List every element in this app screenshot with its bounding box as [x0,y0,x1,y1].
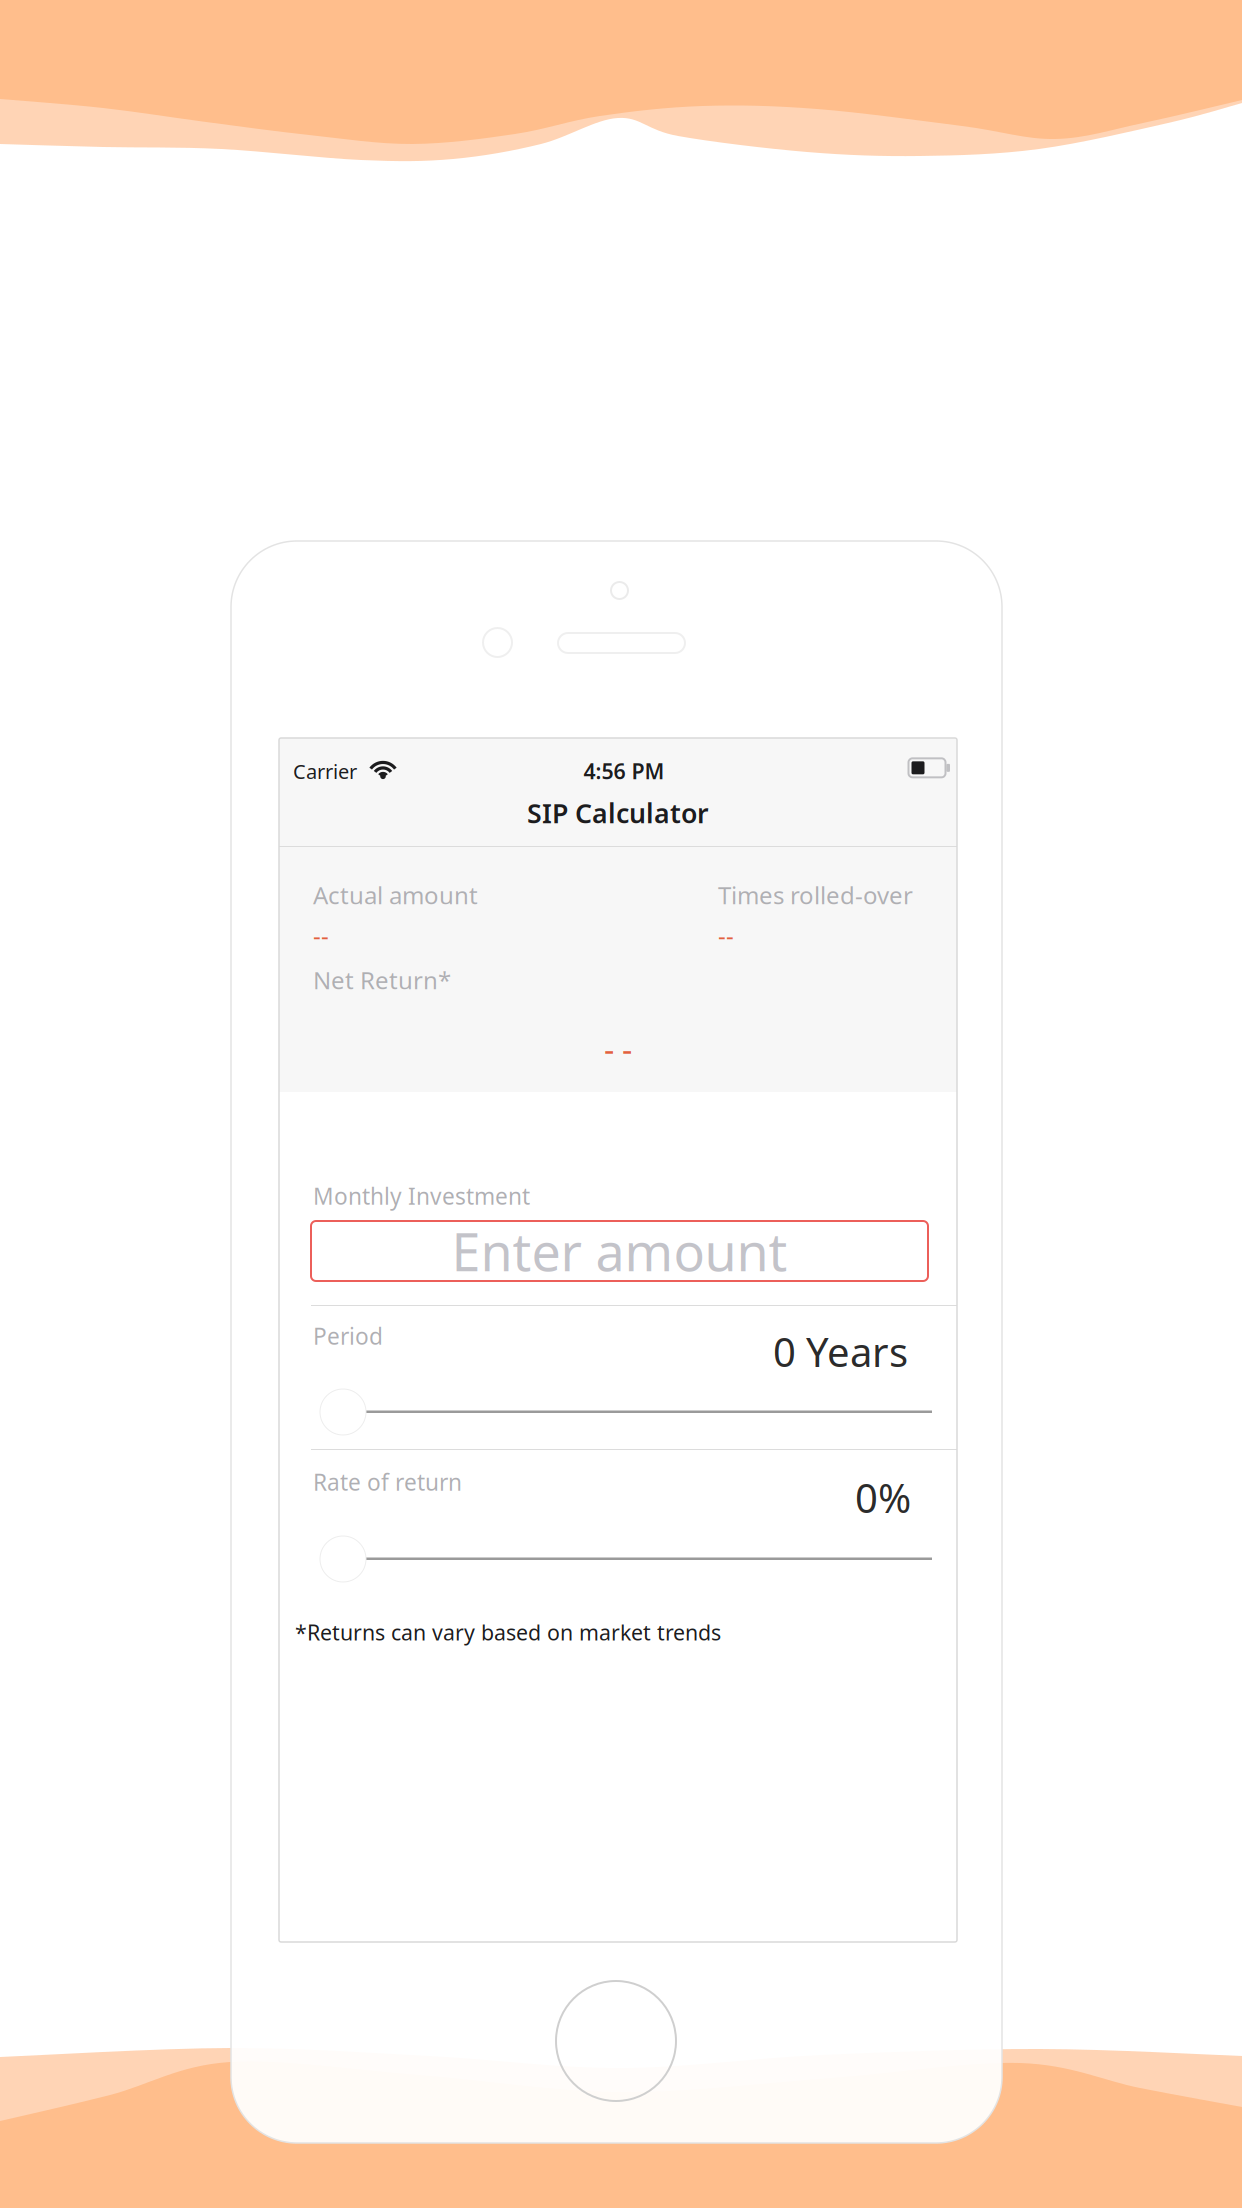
staticText: Monthly Investment [313,1181,530,1211]
staticText: Times rolled-over [718,879,913,911]
staticText: SIP Calculator [527,795,709,831]
staticText: Actual amount [313,879,478,911]
staticText: -- [313,919,329,951]
staticText: Enter amount [451,1216,787,1286]
staticText: -- [718,919,734,951]
staticText: Net Return* [313,964,451,996]
staticText: - - [604,1028,632,1070]
staticText: 0 Years [773,1325,908,1378]
staticText: 0% [855,1471,911,1524]
staticText: 4:56 PM [583,757,664,785]
staticText: Rate of return [313,1467,462,1497]
staticText: Period [313,1321,383,1351]
staticText: Carrier [293,758,357,784]
button[interactable]: SIP Calculator [279,781,957,845]
staticText: *Returns can vary based on market trends [295,1618,721,1646]
button[interactable]: Enter amount [311,1221,928,1281]
